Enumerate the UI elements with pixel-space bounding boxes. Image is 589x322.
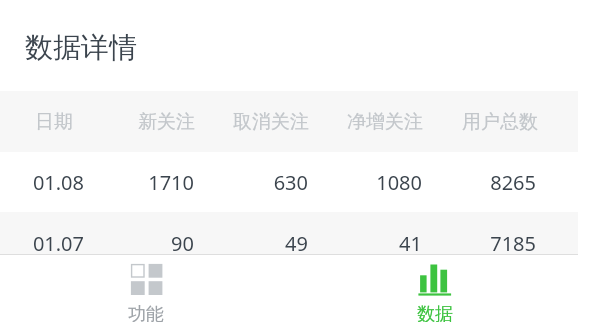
staticText: 取消关注	[233, 110, 309, 134]
staticText: 数据	[417, 303, 453, 322]
other: 数据	[387, 255, 483, 322]
staticText: 41	[399, 230, 422, 257]
staticText: 01.07	[32, 230, 84, 257]
staticText: 净增关注	[347, 110, 423, 134]
button[interactable]: 数据	[387, 255, 483, 322]
staticText: 01.08	[32, 169, 84, 196]
button[interactable]	[0, 212, 578, 254]
button[interactable]: 功能	[98, 255, 194, 322]
staticText: 日期	[35, 110, 73, 134]
staticText: 新关注	[138, 110, 195, 134]
staticText: 8265	[490, 169, 536, 196]
staticText: 功能	[128, 303, 164, 322]
staticText: 90	[171, 230, 194, 257]
staticText: 49	[285, 230, 308, 257]
button[interactable]	[0, 152, 578, 212]
staticText: 630	[273, 169, 308, 196]
other: 功能	[98, 255, 194, 322]
staticText: 7185	[490, 230, 536, 257]
staticText: 数据详情	[25, 30, 137, 65]
staticText: 1710	[148, 169, 194, 196]
staticText: 用户总数	[462, 110, 538, 134]
staticText: 1080	[376, 169, 422, 196]
